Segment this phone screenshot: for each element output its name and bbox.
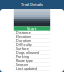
button[interactable]: Last updated	[14, 67, 50, 71]
staticText: Difficulty	[16, 42, 32, 47]
button[interactable]: Parking	[14, 55, 50, 59]
staticText: Route type	[16, 58, 33, 63]
button[interactable]: Start	[14, 26, 50, 31]
staticText: Season	[16, 62, 28, 67]
button[interactable]: Route type	[14, 59, 50, 63]
staticText: Distance	[16, 30, 31, 35]
staticText: Elevation	[16, 34, 31, 39]
staticText: Surface	[16, 46, 29, 51]
staticText: Duration	[16, 38, 31, 43]
staticText: Parking	[16, 54, 29, 59]
staticText: Trail Details	[21, 2, 43, 7]
button[interactable]: Dogs allowed	[14, 51, 50, 55]
button[interactable]: Distance	[14, 31, 50, 35]
staticText: Dogs allowed	[16, 50, 39, 55]
button[interactable]: Season	[14, 63, 50, 67]
button[interactable]: Duration	[14, 39, 50, 43]
button[interactable]: Elevation	[14, 35, 50, 39]
button[interactable]: Difficulty	[14, 43, 50, 47]
staticText: Last updated	[16, 66, 37, 71]
staticText: Start	[27, 26, 37, 31]
button[interactable]: Surface	[14, 47, 50, 51]
